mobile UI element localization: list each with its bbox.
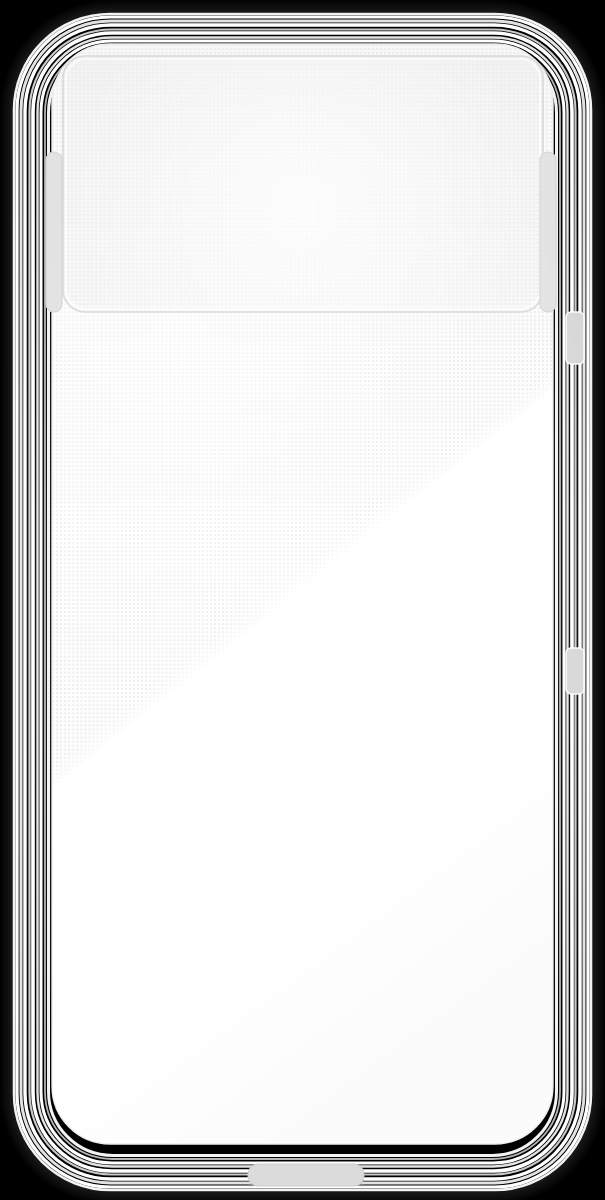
button[interactable]: Clear phone case product preview	[0, 0, 605, 1200]
